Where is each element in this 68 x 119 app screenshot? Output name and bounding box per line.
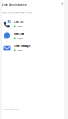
button[interactable]: Send Message	[1, 42, 65, 54]
staticText: We're online and ready to help	[2, 11, 32, 14]
staticText: Available	[17, 37, 23, 39]
staticText: Available	[17, 25, 23, 27]
button[interactable]: Web Chat	[1, 30, 65, 42]
staticText: Send Message	[14, 44, 30, 48]
staticText: Call Us	[14, 20, 23, 24]
staticText: Powered by Service	[3, 108, 19, 110]
staticText: Web Chat	[14, 32, 24, 36]
button[interactable]: Close	[60, 2, 64, 6]
staticText: Live Assistance	[2, 3, 27, 7]
button[interactable]: Call Us	[1, 18, 65, 30]
staticText: Available	[17, 49, 23, 51]
